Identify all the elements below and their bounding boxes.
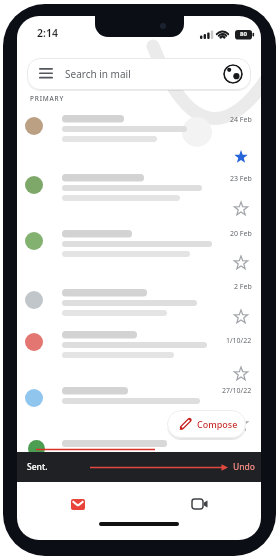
button[interactable]	[223, 64, 243, 84]
button[interactable]	[17, 374, 261, 428]
button[interactable]	[139, 482, 261, 526]
staticText: 80	[240, 30, 247, 38]
staticText: 1/10/22	[226, 336, 252, 346]
button[interactable]	[17, 276, 261, 330]
staticText: 24 Feb	[230, 115, 252, 125]
button[interactable]	[233, 309, 249, 325]
button[interactable]	[17, 217, 261, 271]
button[interactable]	[233, 416, 249, 432]
staticText: 20 Feb	[230, 229, 252, 239]
button[interactable]	[233, 149, 249, 165]
button[interactable]: Search in mail	[27, 58, 251, 90]
staticText: Search in mail	[65, 67, 131, 81]
button[interactable]	[233, 255, 249, 271]
staticText: 23 Feb	[230, 174, 252, 184]
staticText: Sent.	[27, 461, 48, 473]
staticText: Undo	[233, 461, 256, 473]
button[interactable]: Compose	[167, 410, 246, 438]
staticText: PRIMARY	[30, 94, 65, 103]
button[interactable]	[17, 318, 261, 372]
button[interactable]: Undo	[227, 452, 261, 482]
staticText: 2 Feb	[234, 282, 252, 292]
staticText: Compose	[197, 418, 238, 430]
button[interactable]	[233, 366, 249, 382]
button[interactable]	[17, 102, 261, 156]
button[interactable]	[233, 201, 249, 217]
staticText: 2:14	[37, 26, 58, 40]
staticText: 27/10/22	[222, 386, 252, 396]
button[interactable]	[17, 482, 139, 526]
button[interactable]	[17, 161, 261, 215]
